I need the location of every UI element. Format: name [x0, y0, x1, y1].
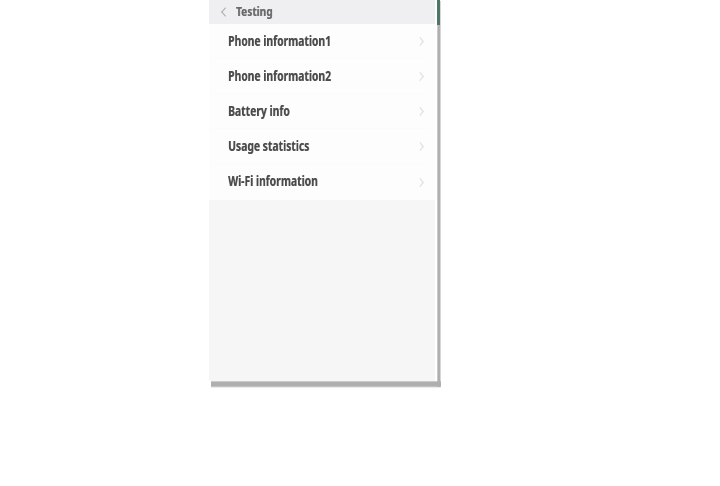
staticText: Wi-Fi information [228, 172, 318, 190]
staticText: Usage statistics [228, 137, 310, 155]
staticText: Testing [236, 3, 273, 19]
staticText: Phone information2 [228, 67, 332, 85]
button[interactable]: Phone information2 [209, 59, 435, 94]
staticText: Battery info [228, 102, 290, 120]
button[interactable]: Wi-Fi information [209, 164, 435, 200]
staticText: Battery info [228, 102, 290, 120]
button[interactable]: Navigate back [209, 0, 435, 24]
button[interactable]: Battery info [209, 94, 435, 129]
staticText: Phone information1 [228, 32, 332, 50]
staticText: Phone information2 [228, 67, 331, 85]
button[interactable]: Usage statistics [209, 129, 435, 164]
staticText: Phone information1 [228, 32, 331, 50]
button[interactable]: Phone information1 [209, 24, 435, 59]
staticText: Wi-Fi information [228, 172, 319, 190]
staticText: Usage statistics [228, 137, 310, 155]
staticText: Testing [236, 3, 273, 19]
button[interactable]: Navigate back [209, 0, 236, 24]
